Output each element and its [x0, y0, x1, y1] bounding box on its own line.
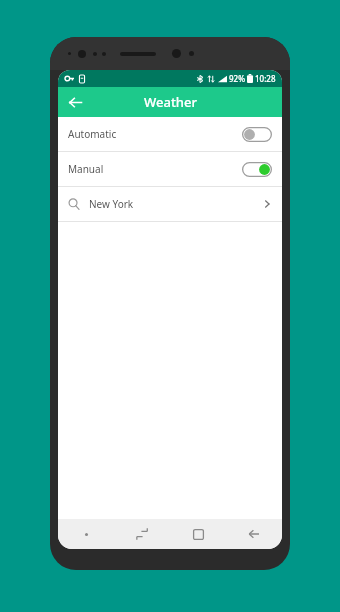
staticText: 10:28 — [255, 73, 276, 84]
button[interactable]: Recents — [114, 519, 170, 549]
button[interactable]: Back — [226, 519, 282, 549]
button[interactable]: Manual — [58, 152, 282, 186]
staticText: New York — [89, 197, 134, 211]
button[interactable]: Back — [62, 89, 88, 115]
button[interactable]: New York — [58, 187, 282, 221]
staticText: Weather — [144, 93, 197, 111]
button[interactable]: Home — [170, 519, 226, 549]
staticText: Manual — [68, 162, 104, 176]
button[interactable]: Automatic — [58, 117, 282, 151]
button[interactable]: Menu — [58, 519, 114, 549]
staticText: Automatic — [68, 127, 117, 141]
staticText: 92% — [229, 73, 245, 84]
